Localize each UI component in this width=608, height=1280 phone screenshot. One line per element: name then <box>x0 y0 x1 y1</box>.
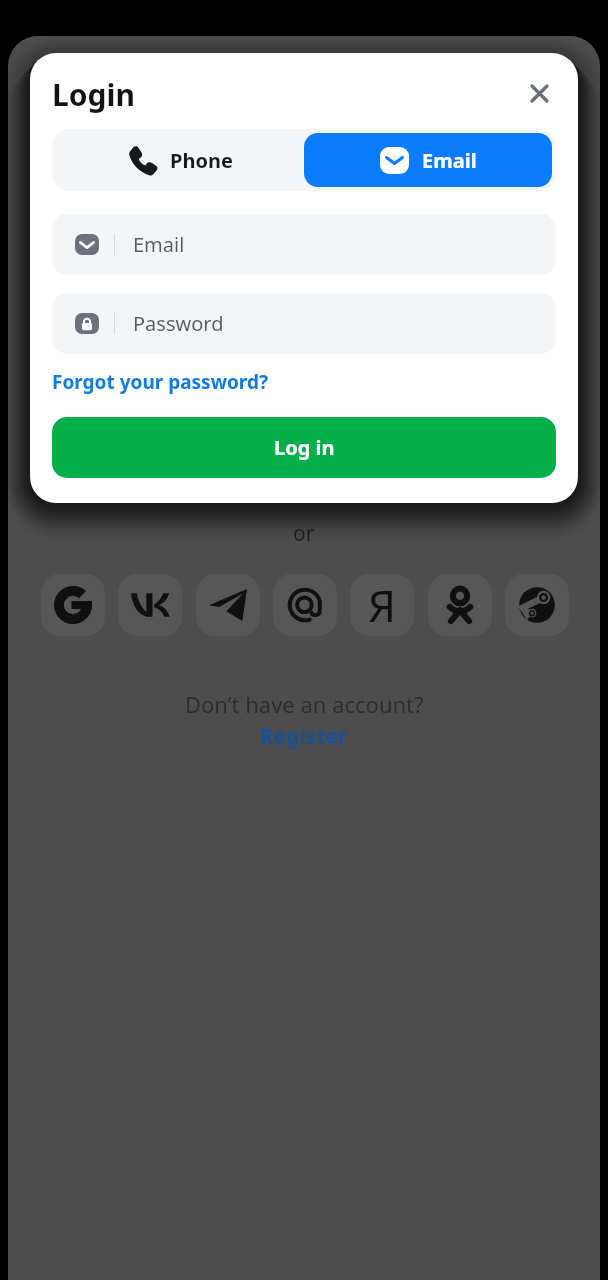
button[interactable]: Email <box>52 214 556 275</box>
button[interactable]: Yandex <box>350 574 414 636</box>
button[interactable]: Close <box>521 75 557 111</box>
button[interactable]: Mail.ru <box>273 574 337 636</box>
button[interactable]: Password <box>52 293 556 354</box>
button[interactable]: Steam <box>505 574 569 636</box>
button[interactable]: VK <box>118 574 182 636</box>
staticText: Email <box>133 231 185 258</box>
button[interactable]: Google <box>41 574 105 636</box>
button[interactable]: Register <box>260 722 348 751</box>
button[interactable]: Email <box>304 133 552 187</box>
button[interactable]: Telegram <box>196 574 260 636</box>
staticText: Don’t have an account? <box>185 689 424 719</box>
staticText: Forgot your password? <box>52 369 268 395</box>
button[interactable]: Forgot your password? <box>52 367 268 397</box>
button[interactable]: Odnoklassniki <box>428 574 492 636</box>
staticText: Email <box>422 147 477 174</box>
staticText: Login <box>52 74 135 115</box>
staticText: Password <box>133 310 224 337</box>
staticText: Register <box>260 722 348 751</box>
button[interactable]: Log in <box>52 417 556 478</box>
staticText: Я <box>368 575 397 635</box>
staticText: or <box>293 519 315 548</box>
staticText: Log in <box>274 434 335 461</box>
staticText: Phone <box>170 147 233 174</box>
button[interactable]: Phone <box>56 133 304 187</box>
